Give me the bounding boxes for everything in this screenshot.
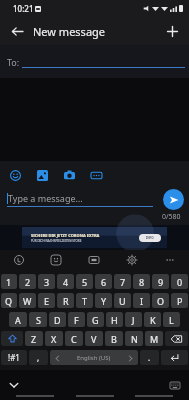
button[interactable]: P — [171, 293, 188, 308]
button[interactable]: 1 — [1, 274, 17, 289]
staticText: 8 — [139, 276, 145, 288]
staticText: P — [177, 295, 183, 307]
button[interactable]: Gallery — [35, 168, 50, 183]
staticText: SICHERE DIR JETZT CORONA EXTRA — [31, 233, 100, 238]
button[interactable]: A — [9, 312, 27, 327]
button[interactable]: Shift — [1, 331, 23, 346]
staticText: A — [15, 314, 21, 326]
staticText: FÜR DICH NACHSPIELZEITEN STORE — [31, 239, 82, 243]
staticText: To: — [7, 56, 20, 68]
button[interactable]: J — [125, 312, 142, 327]
button[interactable]: 2 — [19, 274, 36, 289]
button[interactable]: Back — [6, 20, 28, 42]
button[interactable]: C — [65, 331, 83, 346]
button[interactable]: SICHERE DIR JETZT CORONA EXTRA — [0, 225, 189, 250]
button[interactable]: X — [45, 331, 63, 346]
staticText: 0/580 — [162, 212, 181, 222]
button[interactable]: Stickers — [37, 250, 75, 270]
staticText: 10:21 — [13, 3, 34, 14]
button[interactable]: 6 — [95, 274, 112, 289]
button[interactable]: Type a message… — [7, 192, 159, 207]
button[interactable]: !#1 — [1, 350, 27, 365]
button[interactable]: 5 — [76, 274, 93, 289]
staticText: V — [91, 333, 97, 345]
button[interactable]: To: — [0, 45, 189, 78]
staticText: Z — [31, 333, 37, 345]
button[interactable]: GIF — [75, 250, 113, 270]
button[interactable]: H — [106, 312, 123, 327]
staticText: E — [44, 295, 50, 307]
staticText: X — [51, 333, 57, 345]
button[interactable]: Camera — [62, 168, 77, 183]
button[interactable]: O — [152, 293, 169, 308]
button[interactable]: English (US) — [50, 350, 138, 365]
staticText: T — [82, 295, 88, 307]
staticText: 4 — [63, 276, 69, 288]
staticText: N — [131, 333, 138, 345]
button[interactable]: U — [114, 293, 131, 308]
button[interactable]: T — [76, 293, 93, 308]
button[interactable]: S — [29, 312, 47, 327]
button[interactable]: R — [57, 293, 74, 308]
button[interactable]: L — [163, 312, 180, 327]
staticText: D — [54, 314, 61, 326]
staticText: K — [150, 314, 156, 326]
staticText: INFO — [146, 236, 154, 240]
staticText: English (US) — [77, 354, 111, 362]
staticText: Q — [5, 295, 13, 307]
button[interactable]: Clipboard — [0, 250, 37, 270]
button[interactable]: . — [140, 350, 159, 365]
button[interactable]: 3 — [38, 274, 55, 289]
staticText: 1 — [6, 276, 12, 288]
staticText: . — [148, 352, 151, 363]
button[interactable]: 8 — [133, 274, 150, 289]
button[interactable]: Switch keyboard — [166, 376, 184, 394]
button[interactable]: W — [19, 293, 36, 308]
staticText: 3 — [44, 276, 50, 288]
staticText: S — [36, 314, 41, 326]
button[interactable]: F — [68, 312, 85, 327]
button[interactable]: 0 — [171, 274, 188, 289]
button[interactable]: G — [87, 312, 104, 327]
button[interactable]: K — [144, 312, 161, 327]
staticText: C — [71, 333, 77, 345]
button[interactable]: D — [49, 312, 66, 327]
staticText: 2 — [25, 276, 31, 288]
button[interactable]: Q — [1, 293, 17, 308]
staticText: 5 — [82, 276, 88, 288]
staticText: F — [74, 314, 79, 326]
button[interactable]: I — [133, 293, 150, 308]
button[interactable]: More — [151, 250, 189, 270]
staticText: I — [140, 295, 144, 307]
button[interactable]: E — [38, 293, 55, 308]
button[interactable]: V — [85, 331, 103, 346]
button[interactable]: Z — [25, 331, 43, 346]
button[interactable]: M — [145, 331, 163, 346]
staticText: G — [92, 314, 99, 326]
button[interactable]: 9 — [152, 274, 169, 289]
staticText: , — [37, 352, 40, 363]
button[interactable]: Emoji — [8, 168, 23, 183]
staticText: 7 — [120, 276, 126, 288]
button[interactable]: Keyboard settings — [113, 250, 151, 270]
button[interactable]: Backspace — [165, 331, 188, 346]
button[interactable]: B — [105, 331, 123, 346]
button[interactable]: Hide keyboard — [5, 376, 23, 394]
button[interactable]: Add recipient — [161, 20, 183, 42]
button[interactable]: 7 — [114, 274, 131, 289]
button[interactable]: Y — [95, 293, 112, 308]
staticText: H — [111, 314, 118, 326]
button[interactable]: 4 — [57, 274, 74, 289]
staticText: 9 — [158, 276, 164, 288]
button[interactable]: Send — [163, 189, 184, 210]
button[interactable]: Enter — [161, 350, 188, 365]
staticText: O — [157, 295, 165, 307]
button[interactable]: More options — [89, 168, 104, 183]
button[interactable]: N — [125, 331, 143, 346]
staticText: M — [150, 333, 159, 345]
staticText: W — [23, 295, 32, 307]
staticText: Type a message… — [8, 192, 83, 204]
button[interactable]: , — [29, 350, 48, 365]
staticText: U — [119, 295, 126, 307]
staticText: B — [111, 333, 117, 345]
